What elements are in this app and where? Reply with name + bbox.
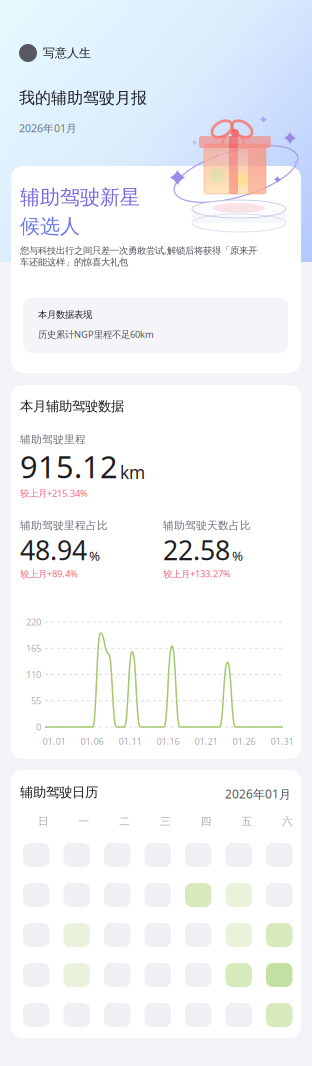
staticText: 01.11 [118, 735, 141, 747]
staticText: 六 [282, 815, 293, 828]
staticText: 915.12 [20, 446, 118, 487]
staticText: 01.06 [80, 735, 103, 747]
staticText: 辅助驾驶里程占比 [20, 519, 108, 532]
staticText: 较上月+215.34% [20, 487, 88, 499]
staticText: 历史累计NGP里程不足60km [38, 328, 154, 340]
staticText: 165 [26, 642, 41, 654]
staticText: % [232, 547, 243, 564]
button[interactable]: 写意人生 [19, 44, 91, 62]
staticText: 220 [26, 616, 41, 628]
staticText: 候选人 [20, 214, 80, 239]
staticText: 本月数据表现 [38, 309, 92, 320]
staticText: 01.31 [270, 735, 293, 747]
staticText: 辅助驾驶天数占比 [163, 519, 251, 532]
staticText: 本月辅助驾驶数据 [20, 398, 124, 414]
staticText: 一 [79, 815, 90, 828]
staticText: 二 [119, 815, 130, 828]
staticText: 五 [241, 815, 252, 828]
staticText: % [89, 547, 100, 564]
staticText: 01.26 [232, 735, 255, 747]
staticText: 01.01 [42, 735, 65, 747]
staticText: 110 [26, 668, 41, 681]
staticText: 日 [38, 815, 49, 828]
staticText: 辅助驾驶里程 [20, 433, 86, 446]
staticText: 写意人生 [43, 46, 91, 60]
staticText: 辅助驾驶新星 [20, 185, 140, 210]
staticText: 22.58 [163, 532, 230, 567]
staticText: 01.21 [194, 735, 217, 747]
staticText: 48.94 [20, 532, 87, 567]
staticText: 三 [160, 815, 171, 828]
staticText: 2026年01月 [225, 786, 291, 802]
staticText: 01.16 [156, 735, 179, 747]
staticText: 辅助驾驶日历 [20, 784, 98, 800]
staticText: 较上月+133.27% [163, 567, 231, 580]
staticText: 0 [36, 721, 41, 733]
staticText: 您与科技出行之间只差一次勇敢尝试,解锁后将获得「原来开 车还能这样」的惊喜大礼包 [20, 244, 257, 268]
staticText: 我的辅助驾驶月报 [19, 88, 147, 108]
staticText: 四 [201, 815, 212, 828]
staticText: 55 [31, 695, 41, 707]
staticText: 较上月+89.4% [20, 567, 78, 580]
staticText: km [120, 461, 145, 484]
staticText: 2026年01月 [19, 121, 77, 135]
